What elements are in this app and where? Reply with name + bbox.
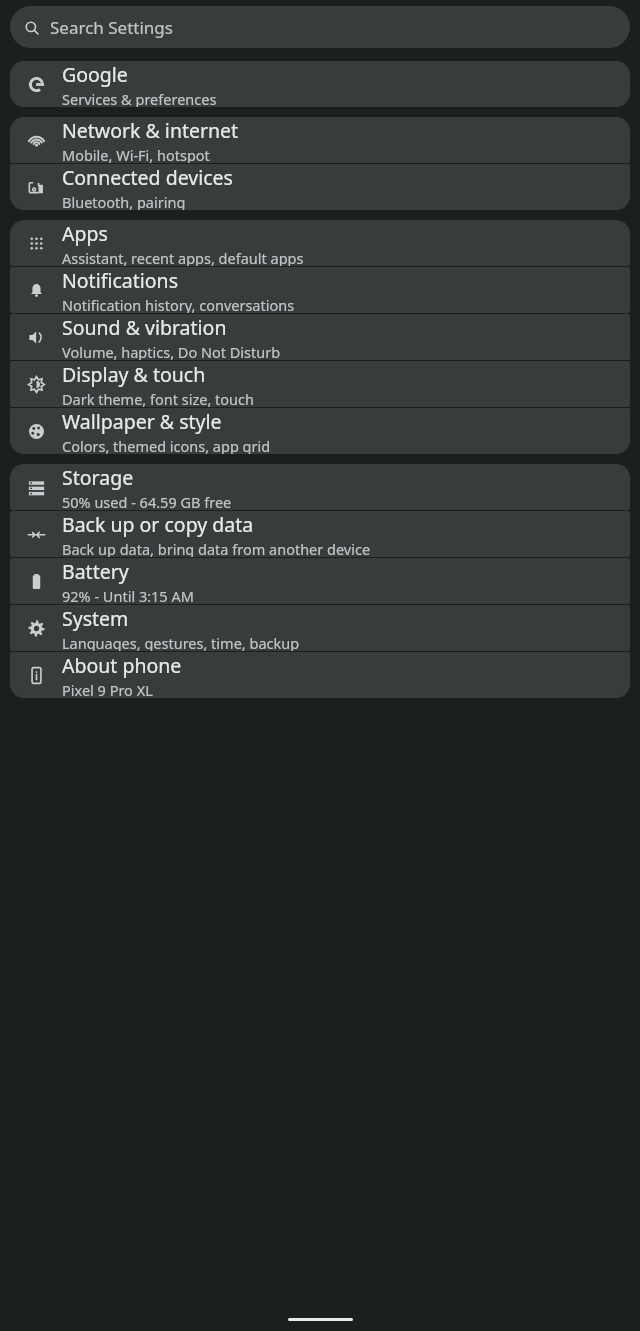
button[interactable]: System xyxy=(10,605,630,651)
staticText: Back up data, bring data from another de… xyxy=(62,539,371,557)
button[interactable]: Apps xyxy=(10,220,630,266)
staticText: Volume, haptics, Do Not Disturb xyxy=(62,342,281,360)
button[interactable]: Connected devices xyxy=(10,164,630,210)
staticText: Mobile, Wi-Fi, hotspot xyxy=(62,145,210,163)
staticText: Storage xyxy=(62,464,134,491)
staticText: Notifications xyxy=(62,267,178,294)
staticText: Search Settings xyxy=(50,16,173,39)
button[interactable]: Battery xyxy=(10,558,630,604)
staticText: Languages, gestures, time, backup xyxy=(62,633,300,651)
staticText: Wallpaper & style xyxy=(62,408,222,435)
staticText: Notification history, conversations xyxy=(62,295,295,313)
staticText: 50% used - 64.59 GB free xyxy=(62,492,232,510)
button[interactable]: Wallpaper & style xyxy=(10,408,630,454)
button[interactable]: Search Settings xyxy=(10,6,630,48)
staticText: Colors, themed icons, app grid xyxy=(62,436,271,454)
button[interactable]: Google xyxy=(10,61,630,107)
staticText: Services & preferences xyxy=(62,89,217,107)
staticText: Google xyxy=(62,61,128,88)
staticText: Apps xyxy=(62,220,108,247)
staticText: Bluetooth, pairing xyxy=(62,192,186,210)
staticText: Back up or copy data xyxy=(62,511,254,538)
button[interactable]: Display & touch xyxy=(10,361,630,407)
staticText: Pixel 9 Pro XL xyxy=(62,680,153,698)
button[interactable]: Sound & vibration xyxy=(10,314,630,360)
button[interactable]: Storage xyxy=(10,464,630,510)
staticText: Dark theme, font size, touch xyxy=(62,389,254,407)
staticText: Battery xyxy=(62,558,129,585)
button[interactable]: Back up or copy data xyxy=(10,511,630,557)
button[interactable]: About phone xyxy=(10,652,630,698)
staticText: 92% - Until 3:15 AM xyxy=(62,586,194,604)
staticText: About phone xyxy=(62,652,182,679)
button[interactable]: Notifications xyxy=(10,267,630,313)
staticText: Display & touch xyxy=(62,361,206,388)
staticText: Assistant, recent apps, default apps xyxy=(62,248,304,266)
button[interactable]: Network & internet xyxy=(10,117,630,163)
staticText: System xyxy=(62,605,129,632)
staticText: Network & internet xyxy=(62,117,239,144)
staticText: Connected devices xyxy=(62,164,233,191)
staticText: Sound & vibration xyxy=(62,314,227,341)
